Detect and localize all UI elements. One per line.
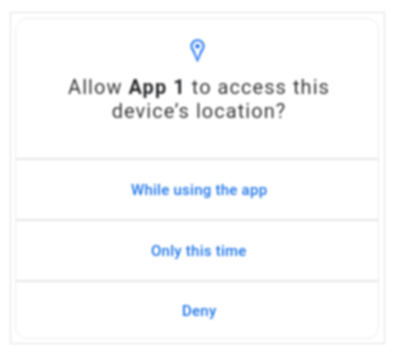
staticText: Only this time xyxy=(151,242,247,260)
button[interactable]: While using the app xyxy=(15,160,379,219)
button[interactable]: Only this time xyxy=(15,221,379,280)
staticText: Allow App 1 to access this device’s loca… xyxy=(17,75,381,123)
button[interactable]: Deny xyxy=(15,282,379,339)
staticText: While using the app xyxy=(131,181,268,199)
staticText: Deny xyxy=(182,302,217,320)
